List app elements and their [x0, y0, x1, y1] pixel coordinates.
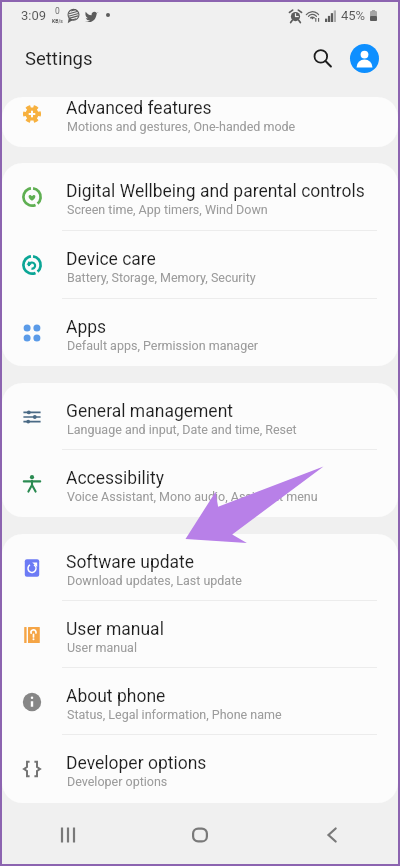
button[interactable]: Device care	[2, 231, 398, 299]
staticText: 0	[55, 6, 60, 16]
button[interactable]: Developer options	[2, 735, 398, 802]
staticText: User manual	[67, 640, 137, 655]
button[interactable]: Recents	[38, 806, 98, 864]
button[interactable]: Advanced features	[2, 97, 398, 130]
staticText: Developer options	[67, 774, 168, 789]
staticText: Settings	[25, 48, 93, 70]
staticText: Developer options	[66, 753, 207, 774]
staticText: Apps	[66, 317, 107, 338]
button[interactable]: About phone	[2, 668, 398, 735]
button[interactable]: Digital Wellbeing and parental controls	[2, 163, 398, 231]
staticText: Battery, Storage, Memory, Security	[67, 270, 256, 285]
button[interactable]: General management	[2, 383, 398, 450]
staticText: Device care	[66, 249, 156, 270]
staticText: Motions and gestures, One-handed mode	[67, 119, 296, 134]
staticText: Voice Assistant, Mono audio, Assistant m…	[67, 489, 318, 504]
staticText: User manual	[66, 619, 164, 640]
button[interactable]: Home	[170, 806, 230, 864]
button[interactable]: User manual	[2, 601, 398, 668]
staticText: 45%	[341, 8, 366, 23]
staticText: Download updates, Last update	[67, 573, 242, 588]
staticText: Default apps, Permission manager	[67, 338, 259, 353]
staticText: Status, Legal information, Phone name	[67, 707, 282, 722]
staticText: 3:09	[21, 8, 47, 23]
button[interactable]: Apps	[2, 299, 398, 366]
staticText: Advanced features	[66, 98, 212, 119]
staticText: Screen time, App timers, Wind Down	[67, 202, 268, 217]
staticText: About phone	[66, 686, 166, 707]
staticText: Language and input, Date and time, Reset	[67, 422, 297, 437]
staticText: KB/s	[52, 18, 63, 24]
button[interactable]: Search	[302, 38, 342, 78]
button[interactable]: Back	[302, 806, 362, 864]
staticText: Accessibility	[66, 468, 164, 489]
button[interactable]: Account	[344, 38, 384, 78]
staticText: Software update	[66, 552, 195, 573]
button[interactable]: Accessibility	[2, 450, 398, 517]
staticText: Digital Wellbeing and parental controls	[66, 181, 365, 202]
staticText: General management	[66, 401, 234, 422]
button[interactable]: Software update	[2, 534, 398, 601]
